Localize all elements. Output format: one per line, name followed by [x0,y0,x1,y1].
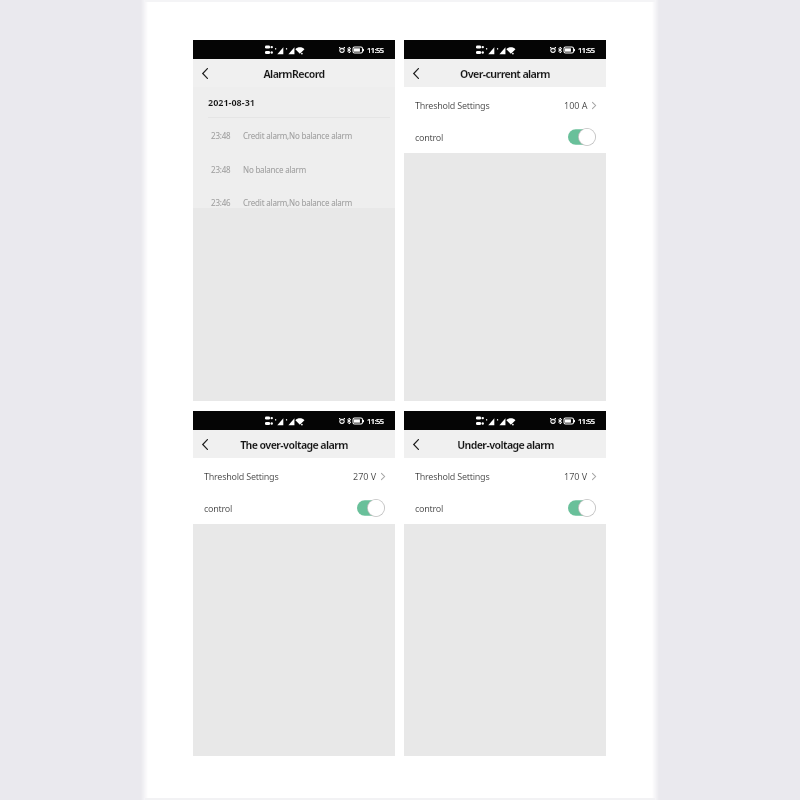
button[interactable]: control toggle, on [568,128,596,146]
button[interactable]: Back [194,62,216,84]
other: Open threshold settings [592,473,596,480]
button[interactable]: control [404,121,606,153]
button[interactable]: control toggle, on [568,499,596,517]
button[interactable]: Threshold Settings [404,460,606,492]
button[interactable]: Threshold Settings [404,89,606,121]
other: Open threshold settings [381,473,385,480]
staticText: control [415,131,444,143]
staticText: 100 A [564,99,588,111]
button[interactable]: 23:48 [193,152,395,186]
button[interactable]: control [404,492,606,524]
staticText: 170 V [564,470,588,482]
other: Mobile signal and Wi-Fi status [265,45,304,55]
staticText: 11:55 [367,416,384,426]
staticText: 23:48 [211,164,231,175]
staticText: 2021-08-31 [208,96,255,108]
staticText: 23:46 [211,197,231,208]
staticText: Under-voltage alarm [457,438,554,452]
other: Mobile signal and Wi-Fi status [476,45,515,55]
button[interactable]: control toggle, on [357,499,385,517]
staticText: 11:55 [367,45,384,55]
staticText: Threshold Settings [204,470,279,482]
staticText: 11:55 [578,45,595,55]
staticText: Credit alarm,No balance alarm [243,197,352,208]
staticText: control [415,502,444,514]
staticText: Threshold Settings [415,99,490,111]
button[interactable]: control [193,492,395,524]
other: Mobile signal and Wi-Fi status [476,416,515,426]
staticText: Over-current alarm [460,67,550,81]
staticText: No balance alarm [243,164,306,175]
button[interactable]: Back [194,433,216,455]
staticText: Credit alarm,No balance alarm [243,130,352,141]
staticText: 23:48 [211,130,231,141]
staticText: The over-voltage alarm [240,438,348,452]
staticText: Threshold Settings [415,470,490,482]
other: Mobile signal and Wi-Fi status [265,416,304,426]
other: Open threshold settings [592,102,596,109]
staticText: 270 V [353,470,377,482]
button[interactable]: Back [405,62,427,84]
button[interactable]: Threshold Settings [193,460,395,492]
button[interactable]: 23:46 [193,185,395,208]
button[interactable]: 23:48 [193,118,395,152]
staticText: AlarmRecord [263,67,325,81]
staticText: 11:55 [578,416,595,426]
button[interactable]: Back [405,433,427,455]
staticText: control [204,502,233,514]
